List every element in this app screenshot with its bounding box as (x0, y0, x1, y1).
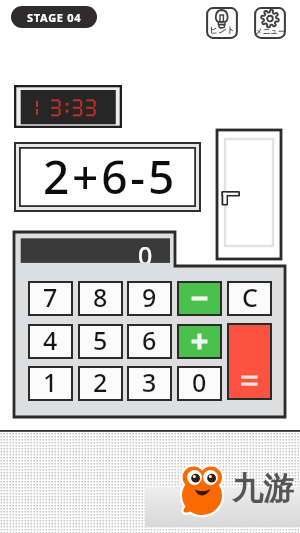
button[interactable]: 0 (179, 368, 220, 399)
staticText: 0 (138, 238, 153, 263)
staticText: 7 (43, 280, 58, 311)
staticText: 5 (93, 323, 108, 354)
staticText: メニュー (254, 27, 286, 36)
staticText: 0 (192, 365, 207, 396)
staticText: 9 (142, 280, 157, 311)
staticText: 九游 (232, 469, 294, 508)
button[interactable]: 5 (80, 326, 121, 357)
button[interactable] (179, 326, 220, 357)
staticText: 2+6-5 (43, 145, 178, 208)
button[interactable]: 7 (30, 283, 71, 314)
staticText: 1 (43, 365, 58, 396)
button[interactable]: 3 (129, 368, 170, 399)
staticText: ヒント (206, 25, 238, 36)
staticText: 3 (142, 365, 157, 396)
button[interactable]: 6 (129, 326, 170, 357)
button[interactable] (179, 283, 220, 314)
button[interactable]: 4 (30, 326, 71, 357)
staticText: STAGE 04 (27, 10, 82, 25)
button[interactable]: 2 (80, 368, 121, 399)
staticText: 8 (93, 280, 108, 311)
staticText: 2 (93, 365, 108, 396)
staticText: C (242, 280, 258, 311)
button[interactable]: 1 (30, 368, 71, 399)
button[interactable]: 9 (129, 283, 170, 314)
button[interactable]: C (229, 283, 270, 314)
button[interactable]: 8 (80, 283, 121, 314)
button[interactable]: メニュー (254, 7, 286, 39)
button[interactable]: STAGE 04 (11, 6, 97, 28)
button[interactable]: ヒント (206, 7, 238, 39)
staticText: 6 (142, 323, 157, 354)
button[interactable] (229, 325, 270, 398)
staticText: 4 (43, 323, 58, 354)
